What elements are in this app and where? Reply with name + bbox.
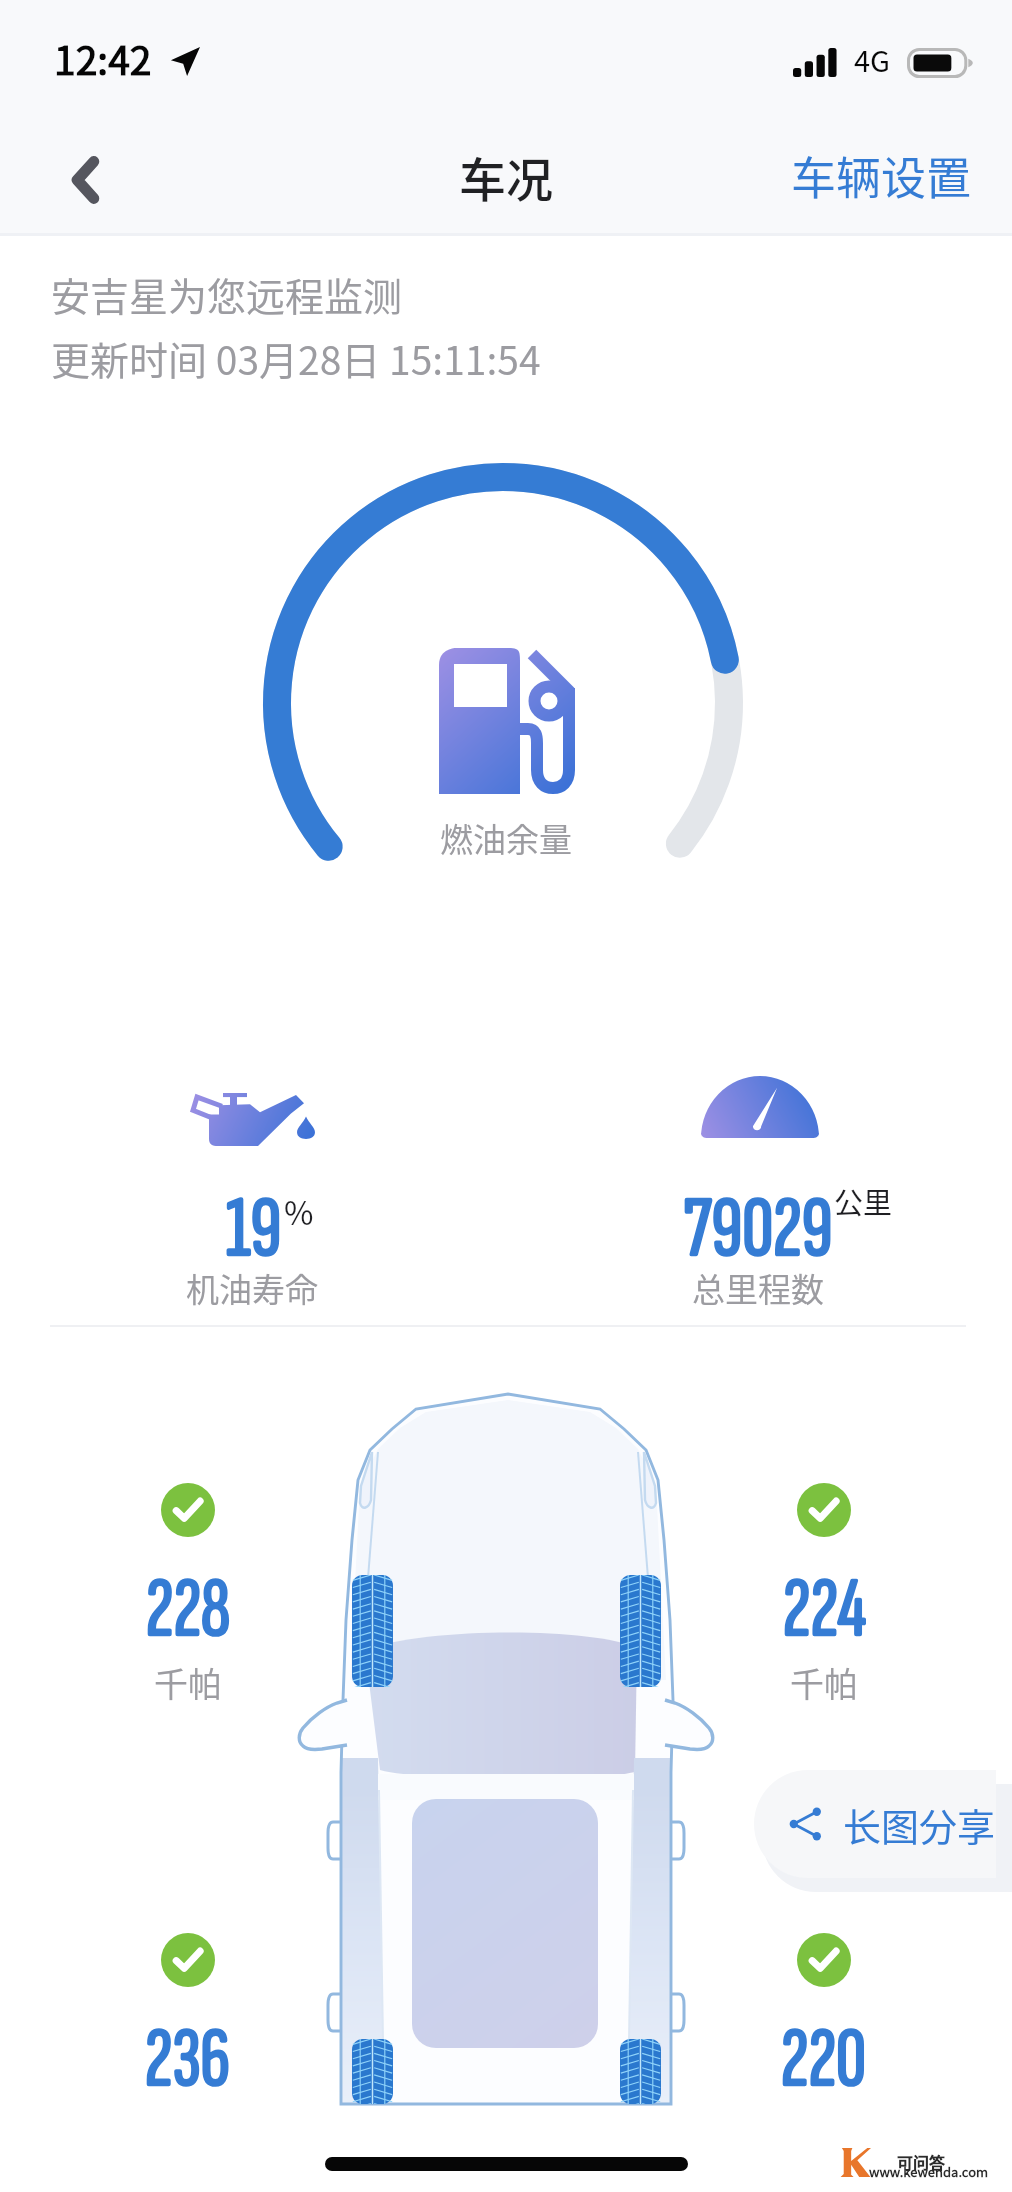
staticText: 总里程数 bbox=[692, 1264, 824, 1312]
staticText: 可问答 bbox=[897, 2150, 946, 2173]
staticText: 千帕 bbox=[154, 1658, 222, 1707]
button[interactable]: 车辆设置 bbox=[767, 131, 1012, 220]
staticText: 4G bbox=[854, 38, 891, 80]
staticText: % bbox=[284, 1188, 314, 1234]
staticText: 千帕 bbox=[790, 1658, 858, 1707]
button[interactable]: Back bbox=[46, 140, 122, 218]
staticText: 220 bbox=[781, 2010, 867, 2110]
staticText: 车况 bbox=[459, 142, 553, 210]
staticText: 12:42 bbox=[54, 30, 152, 86]
staticText: 长图分享 bbox=[843, 1797, 996, 1852]
staticText: 安吉星为您远程监测 bbox=[51, 266, 403, 322]
button[interactable]: 长图分享 bbox=[754, 1770, 996, 1878]
staticText: 79029 bbox=[684, 1178, 833, 1281]
staticText: 更新时间 03月28日 15:11:54 bbox=[51, 330, 541, 386]
staticText: 燃油余量 bbox=[440, 814, 572, 862]
staticText: www.kewenda.com bbox=[869, 2162, 989, 2181]
staticText: 机油寿命 bbox=[186, 1264, 318, 1312]
staticText: 公里 bbox=[834, 1180, 893, 1222]
staticText: 车辆设置 bbox=[791, 143, 972, 208]
staticText: 19 bbox=[226, 1178, 282, 1281]
staticText: 228 bbox=[146, 1560, 231, 1660]
staticText: 236 bbox=[145, 2010, 231, 2110]
staticText: 224 bbox=[783, 1560, 866, 1660]
